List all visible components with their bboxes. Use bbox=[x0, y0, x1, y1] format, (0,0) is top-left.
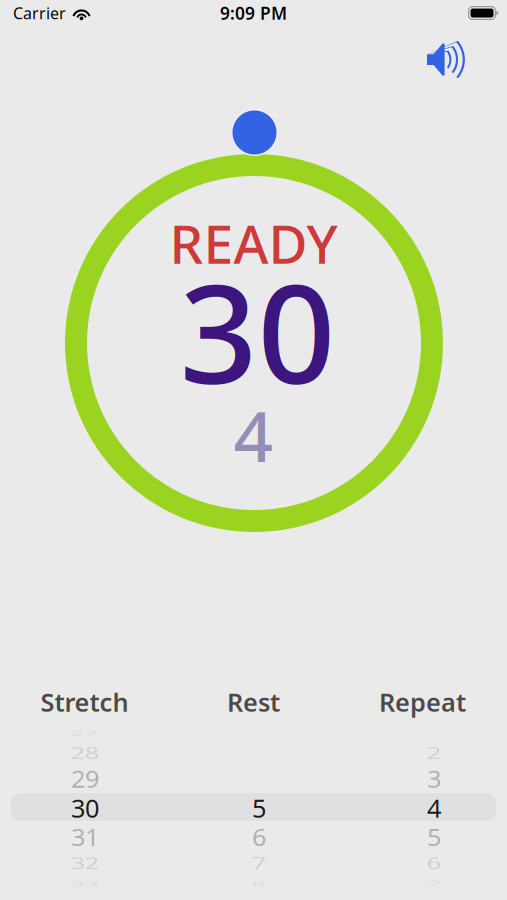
staticText: 27 bbox=[71, 716, 99, 749]
staticText: 9:09 PM bbox=[220, 1, 287, 24]
button[interactable]: Rest seconds bbox=[179, 722, 339, 897]
staticText: 6 bbox=[252, 820, 266, 854]
staticText: 31 bbox=[71, 820, 99, 854]
staticText: Repeat bbox=[379, 685, 466, 719]
staticText: Carrier bbox=[13, 2, 66, 24]
staticText: 30 bbox=[71, 791, 99, 825]
staticText: 7 bbox=[427, 866, 441, 900]
staticText: Rest bbox=[227, 685, 280, 719]
staticText: 4 bbox=[427, 791, 441, 825]
button[interactable]: Repeat count bbox=[354, 722, 507, 897]
staticText: 28 bbox=[71, 736, 99, 770]
staticText: 29 bbox=[71, 762, 99, 796]
staticText: 5 bbox=[427, 820, 441, 854]
staticText: 4 bbox=[233, 389, 273, 481]
staticText: 6 bbox=[427, 846, 441, 880]
staticText: 3 bbox=[427, 762, 441, 796]
button[interactable]: Stretch seconds bbox=[5, 722, 165, 897]
button[interactable]: Sound bbox=[423, 37, 471, 83]
staticText: 7 bbox=[252, 846, 266, 880]
staticText: READY bbox=[169, 208, 337, 278]
staticText: 8 bbox=[252, 866, 266, 900]
staticText: 30 bbox=[179, 241, 335, 421]
staticText: 5 bbox=[252, 791, 266, 825]
staticText: 2 bbox=[427, 736, 441, 770]
staticText: Stretch bbox=[40, 685, 128, 719]
staticText: 33 bbox=[71, 866, 99, 900]
staticText: 32 bbox=[71, 846, 99, 880]
